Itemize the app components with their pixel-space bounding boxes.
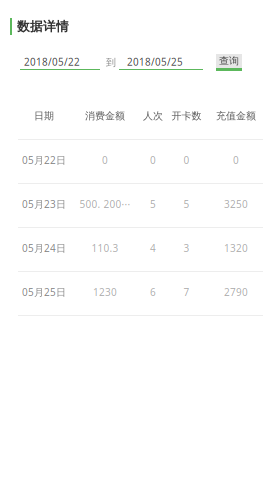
staticText: 0: [183, 153, 189, 167]
staticText: 110.3: [91, 241, 118, 255]
staticText: 05月23日: [22, 197, 66, 211]
staticText: 3: [183, 241, 189, 255]
staticText: 5: [150, 197, 156, 211]
staticText: 到: [106, 56, 116, 69]
staticText: 1230: [93, 285, 117, 299]
staticText: 人次: [143, 110, 163, 122]
staticText: 查询: [219, 55, 239, 67]
staticText: 2018/05/25: [127, 55, 183, 69]
staticText: 数据详情: [17, 18, 69, 34]
staticText: 0: [150, 153, 156, 167]
staticText: 05月22日: [22, 153, 66, 167]
staticText: 2018/05/22: [24, 55, 80, 69]
staticText: 3250: [224, 197, 248, 211]
staticText: 消费金额: [85, 110, 125, 122]
button[interactable]: 2018/05/22: [20, 55, 100, 70]
button[interactable]: 查询: [216, 54, 242, 71]
staticText: 7: [183, 285, 189, 299]
staticText: 500. 200···: [79, 197, 130, 211]
staticText: 2790: [224, 285, 248, 299]
button[interactable]: 2018/05/25: [119, 55, 203, 70]
staticText: 日期: [34, 110, 54, 122]
staticText: 05月25日: [22, 285, 66, 299]
staticText: 0: [102, 153, 108, 167]
staticText: 0: [233, 153, 239, 167]
staticText: 6: [150, 285, 156, 299]
staticText: 充值金额: [216, 110, 256, 122]
staticText: 4: [150, 241, 156, 255]
staticText: 05月24日: [22, 241, 66, 255]
staticText: 1320: [224, 241, 248, 255]
staticText: 开卡数: [171, 110, 201, 122]
staticText: 5: [183, 197, 189, 211]
